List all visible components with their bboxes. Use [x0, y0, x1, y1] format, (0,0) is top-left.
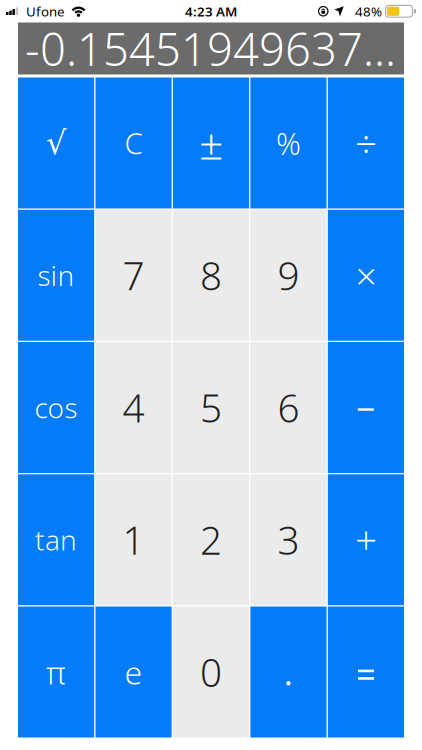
- staticText: 7: [122, 250, 144, 301]
- staticText: 3: [277, 514, 299, 565]
- staticText: %: [276, 123, 301, 163]
- button[interactable]: 1: [95, 474, 172, 605]
- button[interactable]: Tangent: [18, 474, 94, 605]
- button[interactable]: Sine: [18, 210, 94, 341]
- staticText: 5: [200, 382, 222, 433]
- button[interactable]: 5: [173, 342, 249, 473]
- button[interactable]: Plus minus: [173, 77, 249, 208]
- button[interactable]: 4: [95, 342, 172, 473]
- button[interactable]: 9: [250, 210, 327, 341]
- staticText: 4: [122, 382, 144, 433]
- button[interactable]: 7: [95, 210, 172, 341]
- button[interactable]: Euler's number: [95, 606, 172, 737]
- staticText: 48%: [355, 2, 382, 20]
- staticText: Ufone: [26, 2, 65, 20]
- button[interactable]: Square root: [18, 77, 94, 208]
- button[interactable]: Decimal point: [250, 606, 327, 737]
- staticText: -0.15451949637...: [25, 18, 396, 79]
- staticText: ±: [199, 115, 223, 171]
- staticText: ×: [355, 250, 376, 300]
- button[interactable]: Multiply: [328, 210, 404, 341]
- button[interactable]: 8: [173, 210, 249, 341]
- staticText: 9: [277, 250, 299, 301]
- button[interactable]: Divide: [328, 77, 404, 208]
- staticText: +: [355, 514, 377, 565]
- button[interactable]: Clear: [95, 77, 172, 208]
- staticText: C: [124, 123, 142, 162]
- staticText: 6: [277, 382, 299, 433]
- staticText: 8: [200, 250, 222, 301]
- staticText: 1: [122, 514, 144, 565]
- staticText: 2: [200, 514, 222, 565]
- button[interactable]: 6: [250, 342, 327, 473]
- staticText: ÷: [355, 117, 377, 169]
- staticText: 0: [200, 646, 222, 698]
- staticText: 4:23 AM: [185, 2, 237, 20]
- button[interactable]: 2: [173, 474, 249, 605]
- button[interactable]: Add: [328, 474, 404, 605]
- button[interactable]: Subtract: [328, 342, 404, 473]
- button[interactable]: 0: [173, 606, 249, 737]
- staticText: sin: [38, 257, 75, 294]
- staticText: cos: [35, 389, 78, 426]
- button[interactable]: Equals: [328, 606, 404, 737]
- button[interactable]: Cosine: [18, 342, 94, 473]
- staticText: √: [46, 125, 66, 161]
- button[interactable]: 3: [250, 474, 327, 605]
- staticText: tan: [35, 521, 77, 558]
- staticText: e: [124, 651, 142, 693]
- button[interactable]: Percent: [250, 77, 327, 208]
- button[interactable]: Pi: [18, 606, 94, 737]
- staticText: π: [46, 651, 66, 693]
